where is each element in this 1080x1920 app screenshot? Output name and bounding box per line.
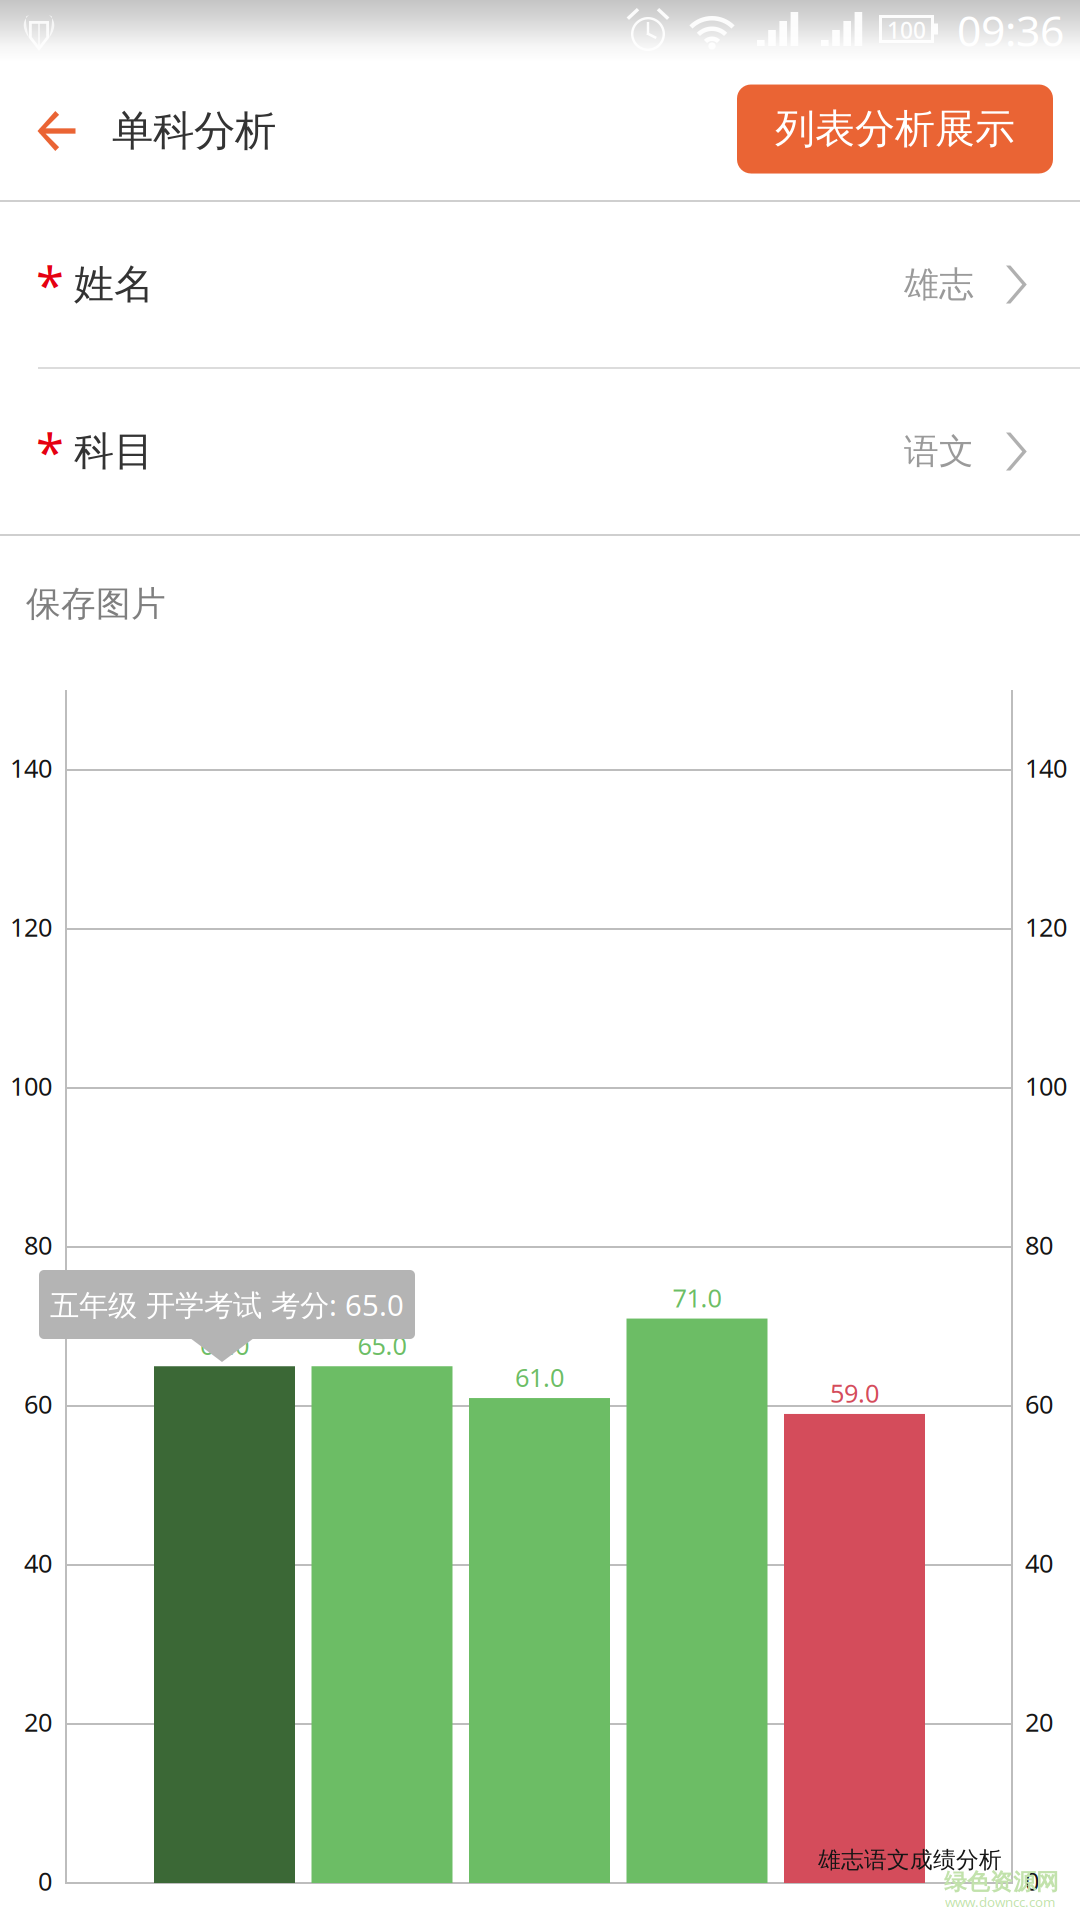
staticText: 五年级 开学考试 考分: 65.0 bbox=[50, 1285, 404, 1324]
staticText: 80 bbox=[24, 1228, 52, 1262]
staticText: 09:36 bbox=[957, 2, 1064, 58]
staticText: 0 bbox=[1025, 1864, 1039, 1898]
staticText: 姓名 bbox=[74, 260, 154, 309]
staticText: 100 bbox=[10, 1069, 52, 1103]
staticText: 20 bbox=[1025, 1705, 1053, 1739]
staticText: 0 bbox=[38, 1864, 52, 1898]
staticText: 40 bbox=[1025, 1546, 1053, 1580]
staticText: * bbox=[36, 418, 76, 485]
staticText: 列表分析展示 bbox=[775, 104, 1015, 153]
staticText: 71.0 bbox=[672, 1281, 721, 1314]
staticText: 绿色资源网 bbox=[944, 1868, 1059, 1896]
button[interactable]: 列表分析展示 bbox=[737, 86, 1053, 175]
button[interactable]: 返回 bbox=[0, 62, 112, 200]
staticText: 140 bbox=[1025, 751, 1067, 785]
button[interactable]: * bbox=[0, 202, 1080, 367]
staticText: 120 bbox=[10, 910, 52, 944]
staticText: 60 bbox=[1025, 1387, 1053, 1421]
staticText: 保存图片 bbox=[26, 583, 166, 625]
staticText: 语文 bbox=[904, 430, 974, 473]
staticText: 100 bbox=[1025, 1069, 1067, 1103]
staticText: 59.0 bbox=[830, 1376, 879, 1410]
staticText: 40 bbox=[24, 1546, 52, 1580]
staticText: 80 bbox=[1025, 1228, 1053, 1262]
staticText: www.downcc.com bbox=[945, 1893, 1055, 1911]
staticText: 65.0 bbox=[200, 1328, 249, 1362]
staticText: 雄志语文成绩分析 bbox=[818, 1846, 1002, 1874]
staticText: 140 bbox=[10, 751, 52, 785]
staticText: * bbox=[36, 251, 76, 318]
button[interactable]: * bbox=[0, 369, 1080, 534]
staticText: 20 bbox=[24, 1705, 52, 1739]
staticText: 61.0 bbox=[515, 1360, 564, 1394]
staticText: 雄志 bbox=[904, 263, 974, 306]
staticText: 100 bbox=[887, 15, 926, 45]
staticText: 65.0 bbox=[357, 1328, 406, 1362]
button[interactable]: 保存图片 bbox=[0, 536, 1080, 672]
staticText: 科目 bbox=[74, 427, 154, 476]
staticText: 单科分析 bbox=[112, 106, 276, 156]
staticText: 60 bbox=[24, 1387, 52, 1421]
staticText: 120 bbox=[1025, 910, 1067, 944]
